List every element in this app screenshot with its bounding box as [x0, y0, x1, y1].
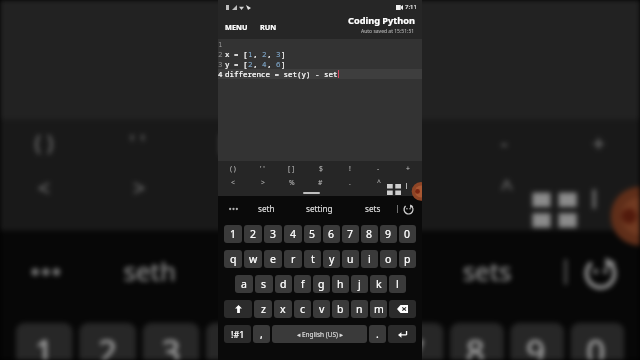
button[interactable]: 9 — [380, 225, 397, 243]
button[interactable]: p — [399, 250, 416, 268]
staticText: Coding Python — [348, 14, 415, 27]
button[interactable]: o — [380, 250, 397, 268]
button[interactable]: ' ' — [248, 161, 277, 175]
button[interactable]: 7 — [342, 225, 359, 243]
button[interactable]: ! — [335, 161, 364, 175]
button[interactable]: . — [368, 164, 459, 208]
button[interactable]: + — [551, 120, 640, 164]
button[interactable]: < — [218, 175, 248, 189]
button[interactable]: g — [313, 275, 330, 293]
button[interactable]: x — [274, 300, 292, 318]
button[interactable]: More options — [16, 237, 76, 307]
button[interactable]: 8 — [361, 225, 378, 243]
button[interactable]: i — [361, 250, 378, 268]
button[interactable]: v — [313, 300, 330, 318]
button[interactable]: a — [235, 275, 253, 293]
button[interactable]: n — [351, 300, 368, 318]
button[interactable]: r — [284, 250, 302, 268]
button[interactable]: !#1 — [224, 325, 251, 343]
button[interactable]: More options — [224, 198, 243, 220]
button[interactable]: Backspace — [389, 300, 416, 318]
button[interactable]: 8 — [450, 323, 504, 360]
button[interactable]: k — [370, 275, 387, 293]
button[interactable]: MENU — [222, 18, 251, 36]
button[interactable]: e — [264, 250, 282, 268]
button[interactable]: Keyboard settings — [574, 237, 627, 307]
button[interactable]: setting — [234, 231, 402, 310]
staticText: 3 — [218, 59, 223, 69]
staticText: # — [318, 178, 323, 187]
button[interactable]: 0 — [570, 323, 624, 360]
button[interactable]: 7 — [390, 323, 444, 360]
button[interactable]: ( ) — [218, 161, 248, 175]
button[interactable]: 9 — [510, 323, 564, 360]
button[interactable]: < — [0, 164, 92, 208]
button[interactable]: ! — [368, 120, 459, 164]
button[interactable]: 5 — [304, 225, 321, 243]
button[interactable]: More symbols — [526, 186, 583, 231]
button[interactable]: [ ] — [184, 120, 276, 164]
button[interactable]: q — [224, 250, 242, 268]
button[interactable]: 4 — [284, 225, 302, 243]
button[interactable]: 1 — [224, 225, 242, 243]
button[interactable]: . — [369, 325, 386, 343]
button[interactable]: j — [351, 275, 368, 293]
button[interactable]: $ — [306, 161, 335, 175]
button[interactable]: 2 — [244, 225, 262, 243]
button[interactable]: 2 — [79, 323, 136, 360]
button[interactable]: [ ] — [277, 161, 306, 175]
button[interactable]: % — [277, 175, 306, 189]
button[interactable]: y — [323, 250, 340, 268]
button[interactable]: c — [294, 300, 311, 318]
button[interactable]: 6 — [329, 323, 383, 360]
button[interactable]: Enter — [388, 325, 416, 343]
button[interactable]: 0 — [399, 225, 416, 243]
button[interactable]: s — [255, 275, 273, 293]
button[interactable]: z — [254, 300, 272, 318]
button[interactable]: More symbols — [385, 182, 403, 196]
button[interactable]: - — [364, 161, 393, 175]
button[interactable]: Keyboard settings — [400, 198, 417, 220]
button[interactable]: 1 — [16, 323, 73, 360]
button[interactable]: m — [370, 300, 387, 318]
button[interactable]: ◂ English (US) ▸ — [272, 325, 367, 343]
button[interactable]: d — [275, 275, 292, 293]
button[interactable]: . — [335, 175, 364, 189]
button[interactable]: > — [92, 164, 184, 208]
button[interactable]: h — [332, 275, 349, 293]
button[interactable]: 5 — [269, 323, 323, 360]
button[interactable]: sets — [346, 196, 399, 221]
staticText: . — [412, 174, 418, 202]
button[interactable]: $ — [276, 120, 367, 164]
button[interactable]: sets — [402, 231, 570, 310]
button[interactable]: ^ — [364, 175, 393, 189]
button[interactable]: w — [244, 250, 262, 268]
button[interactable]: + — [393, 161, 422, 175]
button[interactable]: Shift — [224, 300, 252, 318]
button[interactable]: , — [253, 325, 270, 343]
button[interactable]: seth — [239, 196, 293, 221]
button[interactable]: seth — [63, 231, 234, 310]
button[interactable]: t — [304, 250, 321, 268]
button[interactable]: 4 — [206, 323, 263, 360]
button[interactable]: > — [248, 175, 277, 189]
button[interactable]: 3 — [264, 225, 282, 243]
button[interactable]: 3 — [142, 323, 200, 360]
button[interactable]: b — [332, 300, 349, 318]
button[interactable]: l — [389, 275, 406, 293]
button[interactable]: ( ) — [0, 120, 92, 164]
button[interactable]: 6 — [323, 225, 340, 243]
staticText: < — [38, 174, 51, 202]
button[interactable]: # — [276, 164, 367, 208]
button[interactable]: u — [342, 250, 359, 268]
staticText: 4 — [262, 59, 267, 69]
button[interactable]: # — [306, 175, 335, 189]
button[interactable]: f — [294, 275, 311, 293]
button[interactable]: RUN — [257, 18, 280, 36]
button[interactable]: % — [184, 164, 276, 208]
button[interactable]: setting — [293, 196, 346, 221]
button[interactable]: ^ — [459, 164, 551, 208]
staticText: r — [291, 252, 296, 266]
